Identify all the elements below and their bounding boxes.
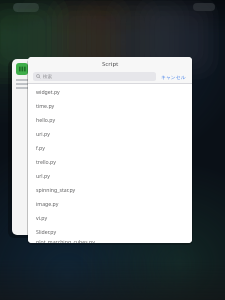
staticText: spinning_star.py [36, 186, 76, 193]
staticText: vi.py [36, 214, 48, 221]
staticText: Slider.py [36, 228, 57, 235]
button[interactable]: キャンセル [160, 72, 187, 82]
staticText: 検索 [43, 74, 52, 80]
button[interactable]: 検索 [33, 72, 156, 81]
staticText: hello.py [36, 116, 56, 123]
button[interactable]: spinning_star.py [28, 182, 192, 196]
button[interactable]: uri.py [28, 126, 192, 140]
staticText: trello.py [36, 158, 56, 165]
staticText: widget.py [36, 88, 60, 95]
staticText: f.py [36, 144, 45, 151]
staticText: uri.py [36, 130, 50, 137]
button[interactable]: image.py [28, 196, 192, 210]
button[interactable]: time.py [28, 98, 192, 112]
staticText: time.py [36, 102, 55, 109]
button[interactable]: url.py [28, 168, 192, 182]
button[interactable]: Slider.py [28, 224, 192, 238]
button[interactable]: widget.py [28, 84, 192, 98]
button[interactable]: trello.py [28, 154, 192, 168]
staticText: キャンセル [161, 74, 186, 80]
button[interactable]: plot_marching_cubes.py [28, 238, 192, 243]
staticText: image.py [36, 200, 59, 207]
staticText: plot_marching_cubes.py [36, 238, 95, 243]
staticText: url.py [36, 172, 50, 179]
button[interactable]: vi.py [28, 210, 192, 224]
staticText: Script [102, 60, 119, 68]
button[interactable]: f.py [28, 140, 192, 154]
button[interactable]: hello.py [28, 112, 192, 126]
